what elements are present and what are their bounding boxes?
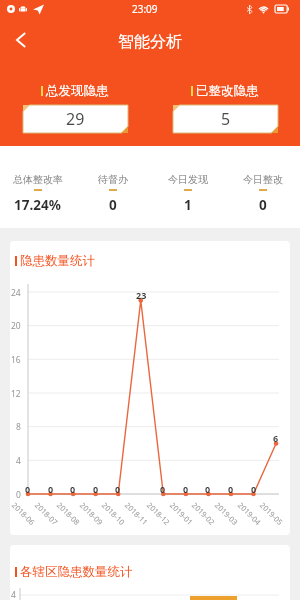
staticText: 2018-12 — [145, 500, 172, 528]
staticText: 2018-11 — [123, 500, 150, 528]
staticText: 2019-01 — [168, 500, 195, 528]
staticText: 6 — [273, 432, 279, 444]
staticText: 2019-04 — [236, 500, 263, 528]
staticText: 23 — [136, 289, 147, 301]
staticText: 0 — [183, 483, 189, 495]
staticText: 0 — [109, 196, 117, 214]
staticText: 12 — [11, 388, 21, 400]
staticText: 今日整改 — [243, 173, 283, 186]
staticText: 8 — [16, 421, 21, 433]
staticText: 4 — [11, 589, 16, 600]
staticText: 智能分析 — [118, 32, 182, 52]
staticText: 2019-02 — [190, 500, 217, 528]
staticText: 0 — [259, 196, 267, 214]
staticText: 23:09 — [132, 2, 158, 16]
staticText: 2019-05 — [258, 500, 285, 528]
staticText: 2018-08 — [55, 500, 82, 528]
staticText: 0 — [251, 483, 257, 495]
staticText: 2018-07 — [33, 500, 60, 528]
staticText: 1 — [184, 196, 192, 214]
staticText: 0 — [93, 483, 99, 495]
staticText: 20 — [11, 320, 21, 332]
button[interactable]: 各辖区隐患数量统计 — [15, 564, 290, 580]
staticText: 总发现隐患 — [46, 83, 109, 99]
staticText: 0 — [160, 483, 166, 495]
staticText: 0 — [115, 483, 121, 495]
staticText: 0 — [228, 483, 234, 495]
staticText: 待督办 — [98, 173, 128, 186]
button[interactable]: 总发现隐患 — [0, 57, 150, 133]
staticText: 0 — [70, 483, 76, 495]
staticText: 各辖区隐患数量统计 — [20, 564, 133, 580]
staticText: 0 — [25, 483, 31, 495]
staticText: 0 — [48, 483, 54, 495]
button[interactable]: 已整改隐患 — [150, 57, 300, 133]
staticText: 总体整改率 — [13, 173, 63, 186]
button[interactable]: 隐患数量统计 — [15, 253, 290, 269]
staticText: 0 — [16, 489, 21, 501]
button[interactable]: 今日发现 — [150, 146, 225, 214]
staticText: 今日发现 — [168, 173, 208, 186]
button[interactable]: Back — [6, 25, 36, 55]
staticText: 2018-10 — [100, 500, 127, 528]
button[interactable]: 总体整改率 — [0, 146, 75, 214]
staticText: 2018-09 — [78, 500, 105, 528]
staticText: 2019-03 — [213, 500, 240, 528]
button[interactable]: 待督办 — [75, 146, 150, 214]
staticText: 已整改隐患 — [196, 83, 259, 99]
staticText: 2018-06 — [10, 500, 37, 528]
staticText: 5 — [221, 108, 231, 130]
staticText: 24 — [11, 287, 21, 299]
staticText: 17.24% — [14, 196, 61, 214]
staticText: 隐患数量统计 — [20, 253, 95, 269]
staticText: 0 — [205, 483, 211, 495]
button[interactable]: 今日整改 — [225, 146, 300, 214]
staticText: 4 — [16, 455, 21, 467]
staticText: 29 — [66, 108, 85, 130]
staticText: 16 — [11, 354, 21, 366]
